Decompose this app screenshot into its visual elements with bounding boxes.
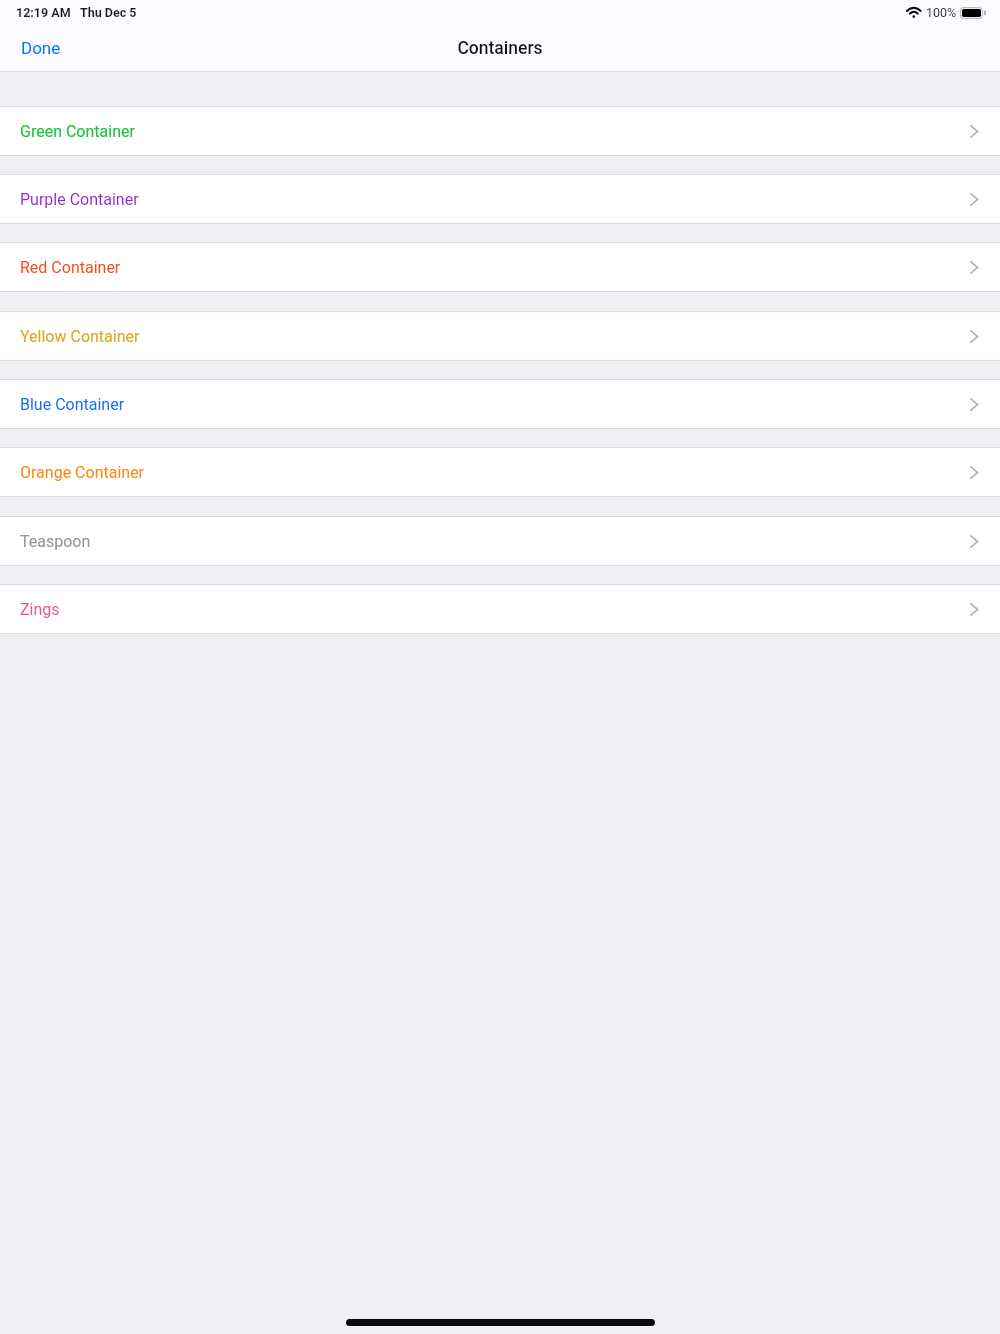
other: Open Teaspoon — [970, 535, 978, 548]
staticText: Teaspoon — [20, 532, 91, 551]
other: Open Orange Container — [970, 466, 978, 479]
button[interactable]: Red Container — [0, 243, 1000, 291]
staticText: Zings — [20, 600, 60, 619]
button[interactable]: Zings — [0, 585, 1000, 633]
staticText: Blue Container — [20, 395, 125, 414]
other: Open Green Container — [970, 125, 978, 138]
button[interactable]: Orange Container — [0, 448, 1000, 496]
button[interactable]: Yellow Container — [0, 312, 1000, 360]
other: Wi-Fi — [907, 7, 921, 18]
other: Open Blue Container — [970, 398, 978, 411]
button[interactable]: Teaspoon — [0, 517, 1000, 565]
staticText: Yellow Container — [20, 327, 140, 346]
button[interactable]: Green Container — [0, 107, 1000, 155]
staticText: Green Container — [20, 122, 135, 141]
staticText: Thu Dec 5 — [80, 5, 137, 20]
button[interactable]: Blue Container — [0, 380, 1000, 428]
other: Open Zings — [970, 603, 978, 616]
staticText: Containers — [457, 38, 543, 59]
button[interactable]: Done — [11, 32, 71, 64]
button[interactable]: Purple Container — [0, 175, 1000, 223]
staticText: Red Container — [20, 258, 121, 277]
staticText: Purple Container — [20, 190, 139, 209]
other: Open Purple Container — [970, 193, 978, 206]
other: Open Yellow Container — [970, 330, 978, 343]
staticText: Done — [21, 38, 61, 58]
other: Open Red Container — [970, 261, 978, 274]
staticText: 100% — [926, 5, 957, 20]
staticText: Orange Container — [20, 463, 145, 482]
other: Battery 100 percent — [960, 7, 986, 19]
staticText: 12:19 AM — [16, 5, 71, 20]
